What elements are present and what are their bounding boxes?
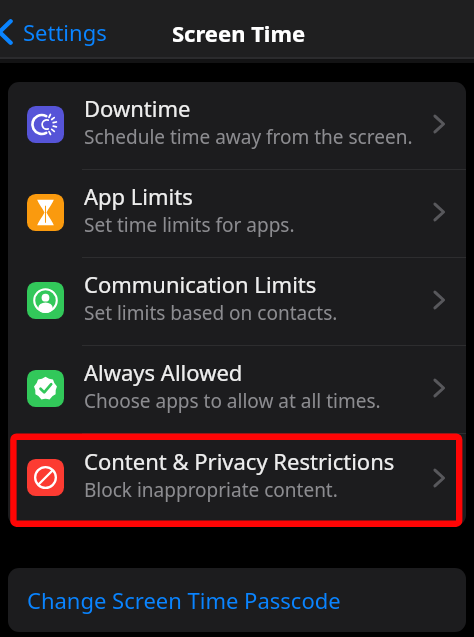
staticText: Screen Time [172, 18, 306, 48]
button[interactable]: Communication Limits [8, 258, 466, 346]
staticText: Content & Privacy Restrictions [84, 446, 395, 476]
staticText: Choose apps to allow at all times. [84, 388, 381, 414]
staticText: Change Screen Time Passcode [27, 585, 341, 615]
button[interactable]: App Limits [8, 170, 466, 258]
button[interactable]: Content & Privacy Restrictions [8, 434, 466, 525]
staticText: Settings [23, 17, 107, 47]
button[interactable]: Settings [0, 11, 117, 53]
staticText: Set time limits for apps. [84, 212, 295, 238]
staticText: Schedule time away from the screen. [84, 124, 413, 150]
staticText: Set limits based on contacts. [84, 300, 338, 326]
button[interactable]: Always Allowed [8, 346, 466, 434]
staticText: Communication Limits [84, 269, 317, 299]
button[interactable]: Downtime [8, 82, 466, 170]
staticText: App Limits [84, 181, 193, 211]
staticText: Downtime [84, 93, 191, 123]
button[interactable]: Change Screen Time Passcode [8, 568, 466, 632]
staticText: Always Allowed [84, 357, 243, 387]
staticText: Block inappropriate content. [84, 477, 338, 503]
